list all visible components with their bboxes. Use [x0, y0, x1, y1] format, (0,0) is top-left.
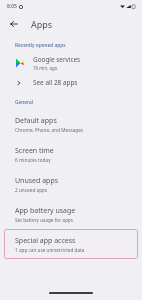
button[interactable]: Back	[5, 15, 23, 33]
staticText: 1 app can use unrestricted data	[15, 247, 85, 253]
staticText: Unused apps	[15, 176, 59, 186]
staticText: Default apps	[15, 116, 57, 126]
staticText: Apps	[31, 18, 53, 30]
staticText: 6 minutes today	[15, 157, 51, 163]
button[interactable]: Google services	[0, 52, 142, 73]
button[interactable]: See all 28 apps	[0, 73, 142, 92]
button[interactable]: Special app access	[4, 229, 138, 259]
staticText: General	[15, 99, 33, 106]
staticText: App battery usage	[15, 206, 76, 216]
button[interactable]: Default apps	[0, 109, 142, 139]
button[interactable]: Screen time	[0, 139, 142, 169]
staticText: Google services	[33, 55, 81, 64]
staticText: 2 unused apps	[15, 187, 48, 193]
staticText: 76 min. ago	[33, 65, 58, 71]
button[interactable]: App battery usage	[0, 199, 142, 229]
staticText: Recently opened apps	[15, 42, 66, 49]
button[interactable]: Unused apps	[0, 169, 142, 199]
staticText: 8:05	[7, 3, 17, 10]
staticText: See all 28 apps	[33, 78, 78, 87]
staticText: Screen time	[15, 146, 54, 156]
staticText: Special app access	[15, 236, 76, 246]
staticText: Chrome, Phone, and Messages	[15, 127, 84, 133]
staticText: Set battery usage for apps	[15, 217, 73, 223]
